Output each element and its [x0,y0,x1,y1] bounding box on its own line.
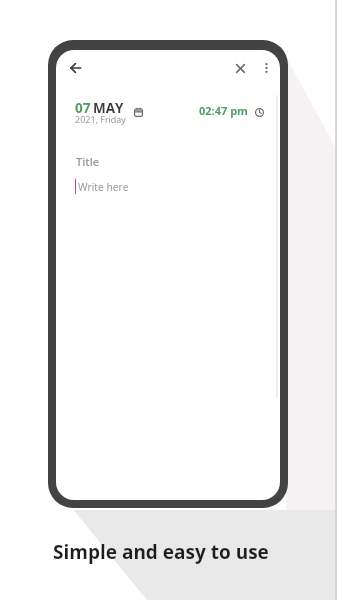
button[interactable]: Pick date [126,100,150,124]
staticText: Title [76,154,100,169]
button[interactable]: More options [255,57,277,79]
staticText: 07 [75,99,91,117]
button[interactable]: Pick time [247,100,271,124]
staticText: Write here [78,180,129,194]
staticText: MAY [93,99,124,117]
button[interactable]: Back [61,54,89,82]
staticText: Simple and easy to use [53,539,269,565]
staticText: 2021, Friday [75,113,126,125]
button[interactable]: Close [226,54,254,82]
staticText: 02:47 pm [199,103,248,118]
